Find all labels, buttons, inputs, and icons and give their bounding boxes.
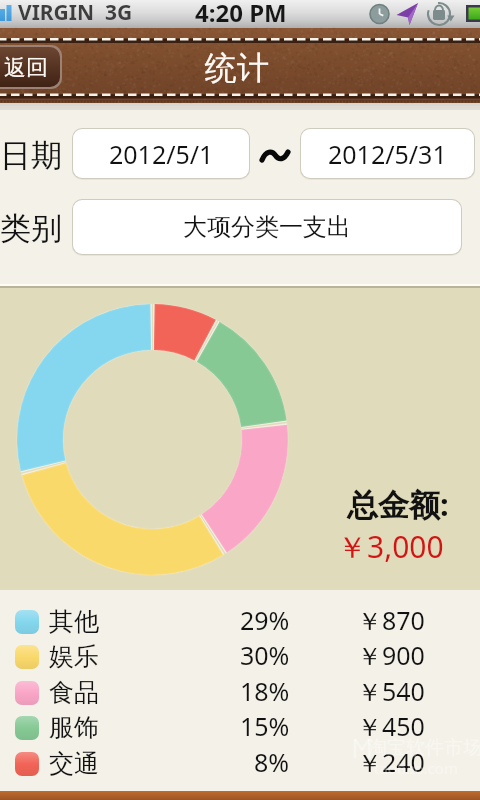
staticText: ￥240 <box>357 745 425 779</box>
button[interactable]: 2012/5/1 <box>73 129 249 178</box>
staticText: 4:20 PM <box>195 0 287 24</box>
staticText: 8% <box>254 745 290 779</box>
staticText: 服饰 <box>49 712 99 743</box>
staticText: 返回 <box>4 54 48 82</box>
staticText: 交通 <box>49 748 99 779</box>
staticText: ￥3,000 <box>337 526 444 567</box>
staticText: 娱乐 <box>49 641 99 672</box>
staticText: 18% <box>240 674 290 708</box>
staticText: 15% <box>240 709 290 743</box>
staticText: ￥540 <box>357 674 425 708</box>
staticText: VIRGIN 3G <box>18 0 133 26</box>
staticText: 其他 <box>49 606 99 637</box>
button[interactable]: 服饰 <box>0 711 480 746</box>
staticText: 2012/5/31 <box>328 137 447 171</box>
staticText: 大项分类一支出 <box>183 212 351 242</box>
staticText: ￥900 <box>357 638 425 672</box>
staticText: ￥870 <box>357 603 425 637</box>
button[interactable]: 食品 <box>0 676 480 711</box>
staticText: 30% <box>240 638 290 672</box>
staticText: 食品 <box>49 677 99 708</box>
button[interactable]: 2012/5/31 <box>301 129 474 178</box>
button[interactable]: 其他 <box>0 605 480 640</box>
button[interactable]: 娱乐 <box>0 640 480 675</box>
staticText: 29% <box>240 603 290 637</box>
staticText: taobao.com <box>374 758 458 778</box>
staticText: 统计 <box>205 48 269 88</box>
button[interactable]: 返回 <box>0 47 60 87</box>
staticText: ￥450 <box>357 709 425 743</box>
staticText: 类别 <box>0 209 62 248</box>
button[interactable]: 交通 <box>0 747 480 782</box>
staticText: 2012/5/1 <box>109 137 214 171</box>
staticText: 日期 <box>0 136 62 175</box>
staticText: 总金额: <box>347 483 449 525</box>
button[interactable]: 大项分类一支出 <box>73 200 461 254</box>
staticText: 淘宝软件市场 <box>368 736 480 760</box>
